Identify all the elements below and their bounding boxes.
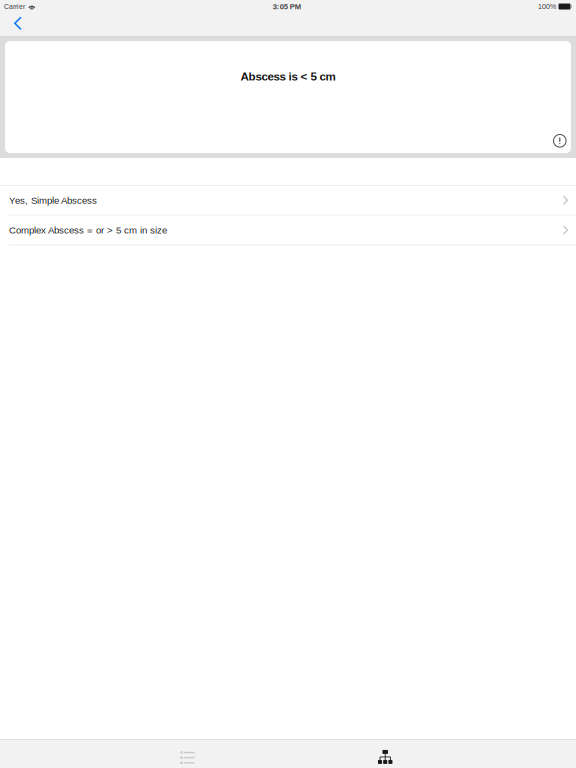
- staticText: 3:05 PM: [273, 2, 301, 11]
- button[interactable]: More information: [553, 134, 571, 153]
- staticText: Abscess is < 5 cm: [240, 70, 335, 83]
- button[interactable]: Yes, Simple Abscess: [0, 186, 576, 215]
- staticText: Complex Abscess = or > 5 cm in size: [9, 225, 167, 235]
- button[interactable]: List: [141, 740, 233, 768]
- staticText: Yes, Simple Abscess: [9, 195, 97, 206]
- staticText: Carrier: [4, 3, 25, 10]
- button[interactable]: Complex Abscess = or > 5 cm in size: [0, 216, 576, 245]
- button[interactable]: Algorithm: [339, 740, 431, 768]
- button[interactable]: Back: [0, 13, 36, 36]
- staticText: 100%: [538, 3, 556, 10]
